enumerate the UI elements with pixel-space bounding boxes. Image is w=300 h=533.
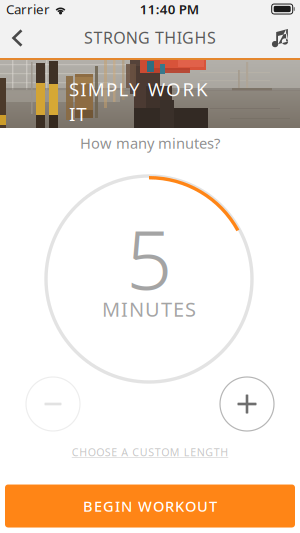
staticText: SIMPLY WORK IT xyxy=(69,77,233,101)
button[interactable]: BEGIN WORKOUT xyxy=(5,484,295,527)
staticText: MINUTES xyxy=(102,296,196,322)
button[interactable]: Music xyxy=(263,18,297,58)
button[interactable]: Increase minutes xyxy=(220,377,274,431)
staticText: STRONG THIGHS xyxy=(84,27,216,48)
staticText: CHOOSE A CUSTOM LENGTH xyxy=(72,445,228,459)
staticText: How many minutes? xyxy=(80,133,220,153)
staticText: 11:40 PM xyxy=(140,0,199,18)
staticText: 5 xyxy=(126,204,172,312)
button[interactable]: Back xyxy=(0,18,34,58)
staticText: BEGIN WORKOUT xyxy=(83,496,217,516)
button[interactable]: CHOOSE A CUSTOM LENGTH xyxy=(40,439,260,465)
staticText: Carrier xyxy=(6,0,50,18)
button[interactable]: Decrease minutes xyxy=(26,377,80,431)
